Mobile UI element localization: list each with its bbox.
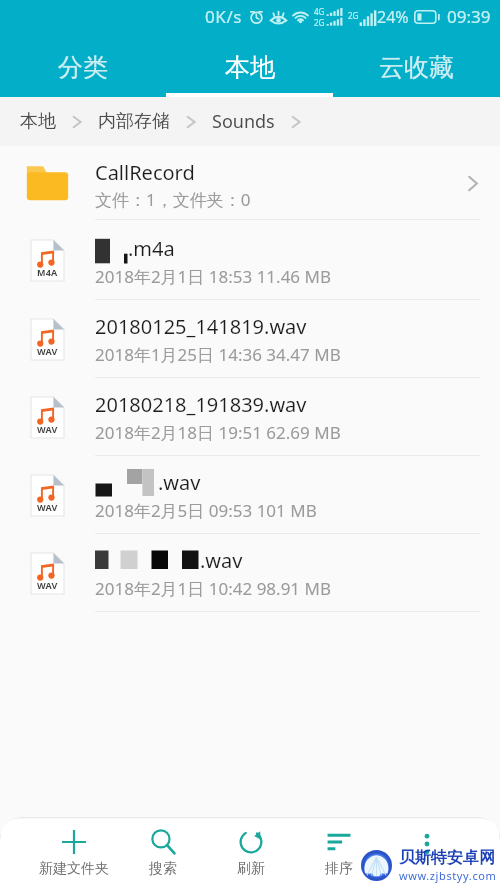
button[interactable]: 分类 bbox=[0, 33, 166, 97]
button[interactable]: 云收藏 bbox=[333, 33, 500, 97]
button[interactable]: WAV bbox=[0, 378, 500, 456]
staticText: WAV bbox=[37, 423, 58, 435]
button[interactable]: 刷新 bbox=[207, 817, 295, 889]
staticText: 2018年2月18日 19:51 62.69 MB bbox=[95, 421, 341, 444]
button[interactable]: WAV bbox=[0, 456, 500, 534]
button[interactable]: More options bbox=[383, 817, 471, 889]
staticText: 2G bbox=[348, 10, 359, 21]
staticText: 文件：1，文件夹：0 bbox=[95, 188, 251, 211]
button[interactable]: CallRecord bbox=[0, 146, 500, 220]
staticText: 排序 bbox=[325, 860, 353, 878]
button[interactable]: M4A bbox=[0, 220, 500, 300]
staticText: 内部存储 bbox=[98, 110, 170, 133]
staticText: WAV bbox=[37, 345, 58, 357]
staticText: Sounds bbox=[212, 109, 275, 134]
button[interactable]: Sounds bbox=[212, 109, 275, 134]
staticText: 24% bbox=[377, 6, 409, 28]
staticText: 贝斯特安卓网 bbox=[399, 848, 495, 868]
staticText: 2G bbox=[314, 17, 325, 28]
staticText: .m4a bbox=[128, 235, 175, 262]
button[interactable]: WAV bbox=[0, 300, 500, 378]
staticText: M4A bbox=[37, 266, 58, 278]
staticText: 20180125_141819.wav bbox=[95, 313, 307, 340]
button[interactable]: 搜索 bbox=[118, 817, 207, 889]
staticText: 分类 bbox=[58, 52, 108, 83]
button[interactable]: Open folder bbox=[460, 170, 486, 196]
staticText: www.zjbstyy.com bbox=[399, 868, 497, 883]
button[interactable]: 排序 bbox=[295, 817, 383, 889]
staticText: 本地 bbox=[225, 52, 275, 83]
staticText: 2018年2月5日 09:53 101 MB bbox=[95, 499, 317, 522]
staticText: 09:39 bbox=[447, 5, 491, 28]
button[interactable]: 本地 bbox=[166, 33, 333, 97]
staticText: 云收藏 bbox=[379, 52, 454, 83]
button[interactable]: WAV bbox=[0, 534, 500, 612]
staticText: 2018年2月1日 10:42 98.91 MB bbox=[95, 577, 331, 600]
staticText: 0K/s bbox=[205, 5, 243, 28]
button[interactable]: 本地 bbox=[20, 110, 56, 133]
staticText: 4G bbox=[314, 6, 325, 17]
button[interactable]: 内部存储 bbox=[98, 110, 170, 133]
staticText: .wav bbox=[158, 469, 201, 496]
staticText: 本地 bbox=[20, 110, 56, 133]
staticText: 刷新 bbox=[237, 860, 265, 878]
staticText: WAV bbox=[37, 501, 58, 513]
staticText: CallRecord bbox=[95, 159, 195, 186]
staticText: 2018年2月1日 18:53 11.46 MB bbox=[95, 265, 331, 288]
staticText: 2018年1月25日 14:36 34.47 MB bbox=[95, 343, 341, 366]
staticText: 新建文件夹 bbox=[39, 860, 109, 878]
button[interactable]: 新建文件夹 bbox=[29, 817, 118, 889]
staticText: .wav bbox=[200, 547, 243, 574]
staticText: 搜索 bbox=[149, 860, 177, 878]
staticText: 20180218_191839.wav bbox=[95, 391, 307, 418]
staticText: WAV bbox=[37, 579, 58, 591]
